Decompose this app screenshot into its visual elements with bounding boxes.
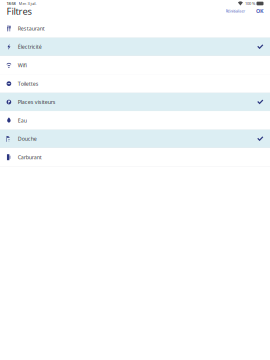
staticText: Toilettes [18,80,39,87]
button[interactable]: Eau [0,111,270,130]
button[interactable]: Restaurant [0,19,270,38]
staticText: 18:58 [6,1,15,6]
staticText: Eau [18,117,27,124]
button[interactable]: Places visiteurs [0,93,270,111]
staticText: Filtres [6,5,31,17]
staticText: Douche [18,135,37,142]
staticText: Wifi [18,62,27,69]
staticText: Places visiteurs [18,98,56,106]
staticText: Carburant [18,154,42,161]
button[interactable]: Carburant [0,148,270,166]
staticText: Restaurant [18,25,45,32]
staticText: Électricité [18,43,42,50]
button[interactable]: Toilettes [0,74,270,93]
button[interactable]: Douche [0,130,270,148]
staticText: Réinitialiser [225,8,245,13]
staticText: 100 % [245,1,255,6]
button[interactable]: OK [256,7,264,15]
staticText: Mer. 3 juil. [18,1,36,6]
button[interactable]: Réinitialiser [225,8,245,14]
button[interactable]: Wifi [0,56,270,74]
button[interactable]: Électricité [0,38,270,56]
staticText: OK [256,7,264,14]
